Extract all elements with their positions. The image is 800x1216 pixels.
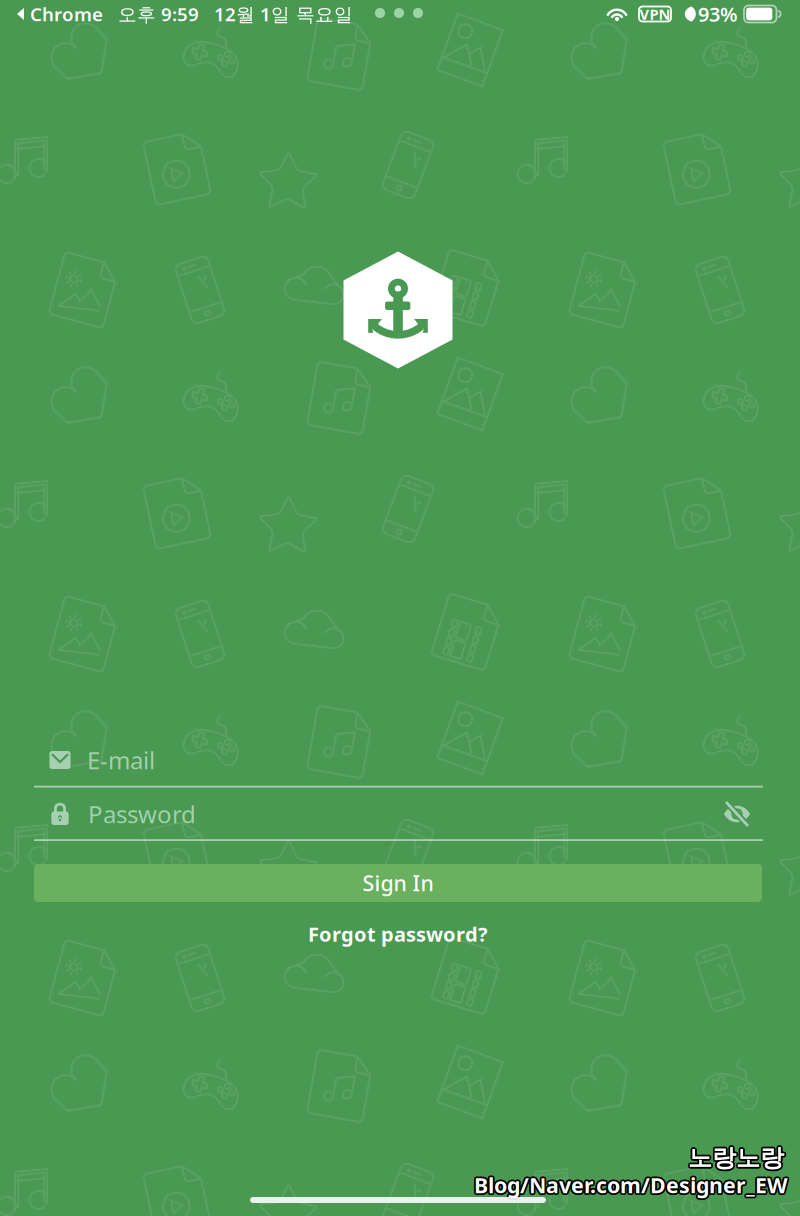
staticText: Blog/Naver.com/Designer_EW (475, 1172, 789, 1200)
staticText: VPN (639, 4, 670, 24)
staticText: Blog/Naver.com/Designer_EW (473, 1170, 787, 1198)
staticText: Password (88, 798, 196, 830)
staticText: Sign In (362, 869, 433, 897)
button[interactable]: Show password (715, 792, 759, 836)
staticText: 노랑노랑 (688, 1141, 784, 1171)
staticText: 노랑노랑 (690, 1143, 786, 1173)
staticText: 노랑노랑 (688, 1145, 784, 1175)
button[interactable]: Forgot password? (248, 914, 548, 954)
staticText: E-mail (87, 744, 155, 776)
staticText: 노랑노랑 (688, 1143, 784, 1173)
staticText: Blog/Naver.com/Designer_EW (474, 1173, 788, 1201)
staticText: Blog/Naver.com/Designer_EW (473, 1172, 787, 1200)
staticText: 93% (698, 1, 738, 27)
staticText: 12월 1일 목요일 (214, 2, 353, 26)
staticText: 오후 9:59 (118, 2, 199, 26)
staticText: 노랑노랑 (689, 1142, 785, 1171)
staticText: Blog/Naver.com/Designer_EW (476, 1171, 790, 1199)
staticText: Forgot password? (308, 921, 488, 947)
staticText: Blog/Naver.com/Designer_EW (472, 1171, 786, 1199)
staticText: 노랑노랑 (687, 1142, 783, 1171)
staticText: 노랑노랑 (687, 1144, 783, 1174)
staticText: Blog/Naver.com/Designer_EW (475, 1170, 789, 1198)
staticText: Blog/Naver.com/Designer_EW (474, 1169, 788, 1197)
staticText: 노랑노랑 (686, 1143, 782, 1173)
staticText: Chrome (30, 2, 103, 26)
button[interactable]: Sign In (34, 864, 762, 902)
staticText: Blog/Naver.com/Designer_EW (474, 1171, 788, 1199)
staticText: 노랑노랑 (689, 1144, 785, 1174)
